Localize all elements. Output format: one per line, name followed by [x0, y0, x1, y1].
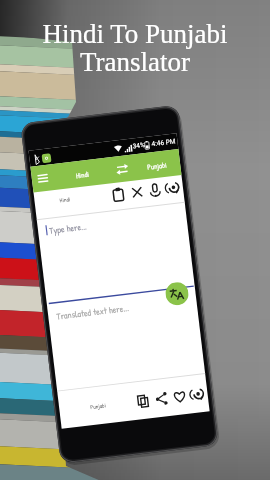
staticText: Translated text here... [56, 302, 130, 323]
staticText: Type here... [48, 220, 88, 237]
staticText: 34% [132, 141, 146, 150]
staticText: Punjabi [147, 160, 168, 172]
staticText: Hindi [59, 195, 71, 204]
staticText: Punjabi [90, 401, 107, 411]
button[interactable] [30, 149, 181, 193]
staticText: Hindi To Punjabi Translator [0, 19, 270, 77]
staticText: 4:46 PM [151, 137, 176, 148]
staticText: Hindi [75, 169, 90, 180]
button[interactable]: Translate [164, 281, 190, 307]
